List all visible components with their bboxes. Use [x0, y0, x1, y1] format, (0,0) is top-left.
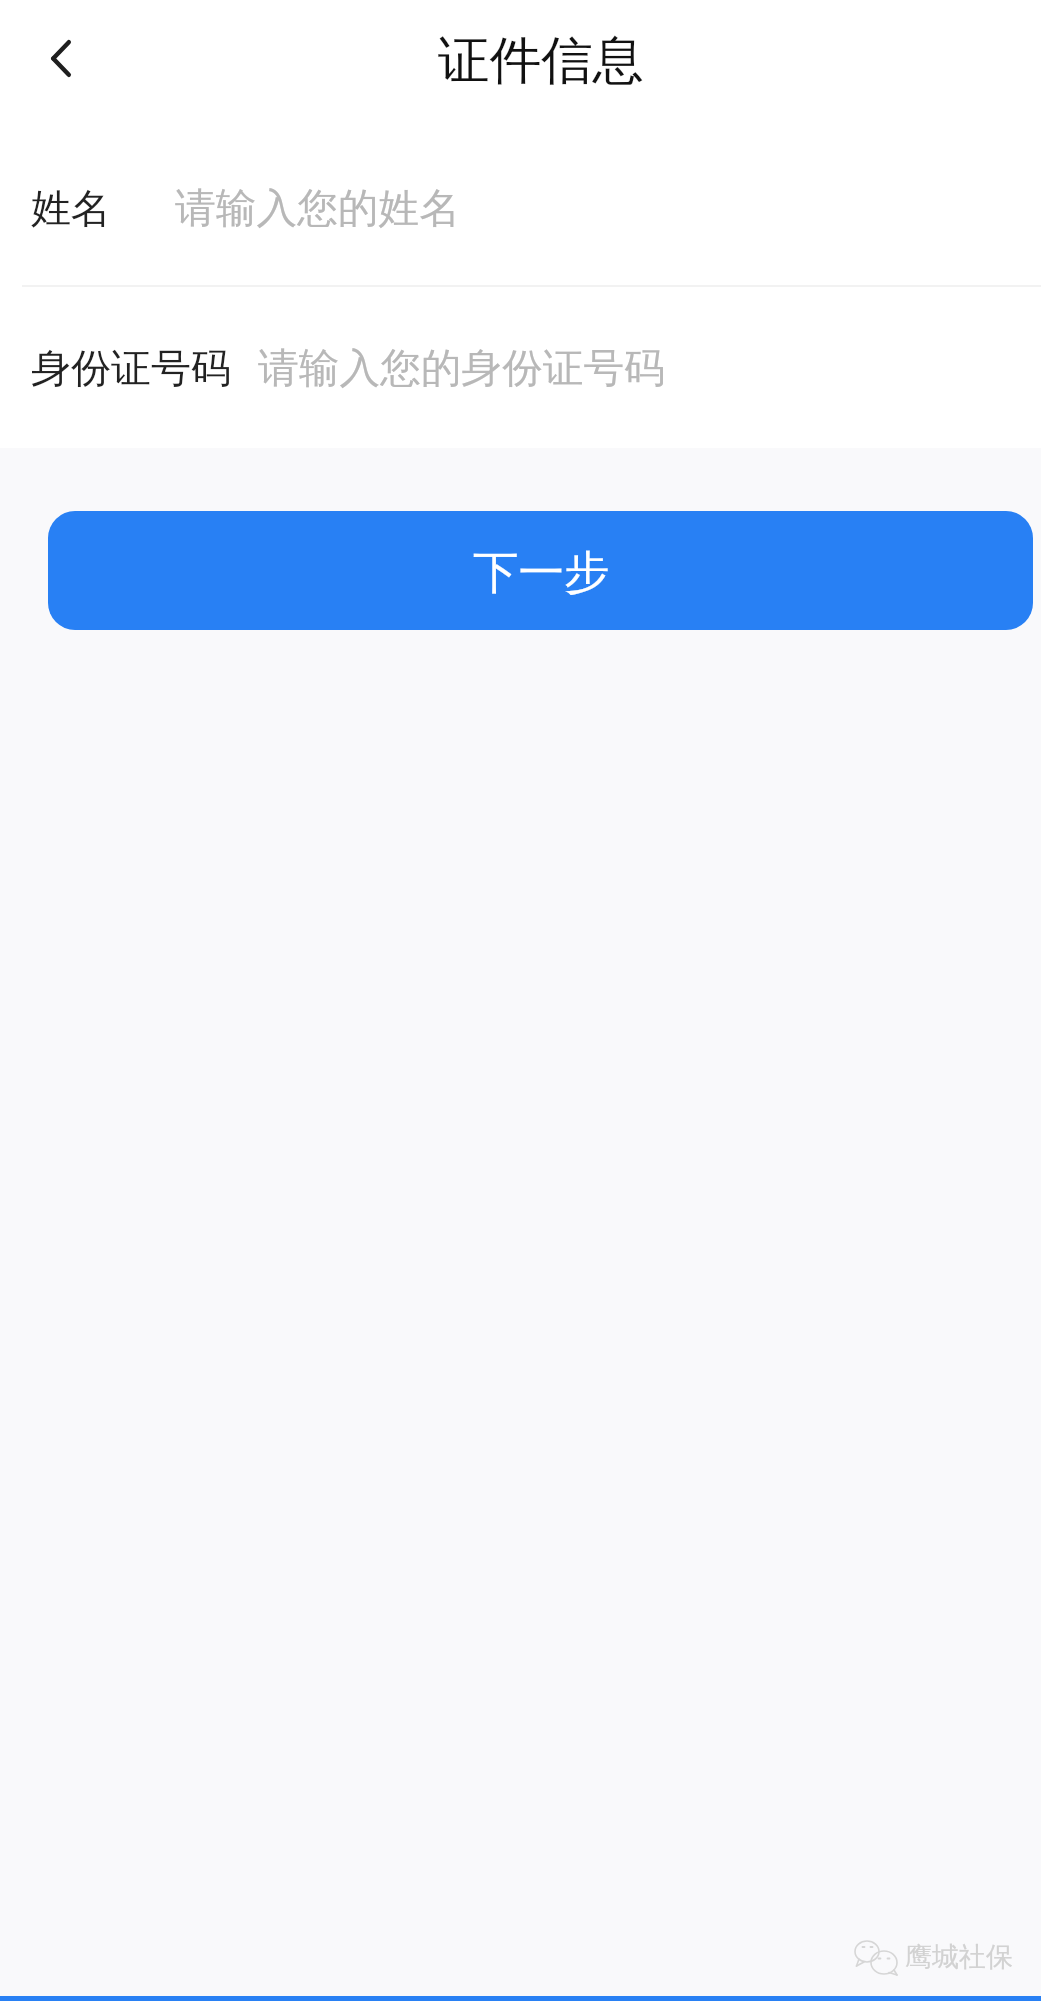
- button[interactable]: 身份证号码: [0, 287, 1041, 448]
- staticText: 证件信息: [438, 28, 644, 93]
- staticText: 鹰城社保: [905, 1940, 1013, 1974]
- button[interactable]: 下一步: [48, 511, 1033, 630]
- staticText: 姓名: [31, 183, 111, 233]
- staticText: 下一步: [473, 544, 610, 601]
- button[interactable]: 姓名: [0, 130, 1041, 285]
- staticText: 请输入您的身份证号码: [258, 343, 665, 394]
- staticText: 请输入您的姓名: [175, 183, 460, 234]
- staticText: 身份证号码: [31, 343, 231, 393]
- button[interactable]: Back: [13, 10, 109, 106]
